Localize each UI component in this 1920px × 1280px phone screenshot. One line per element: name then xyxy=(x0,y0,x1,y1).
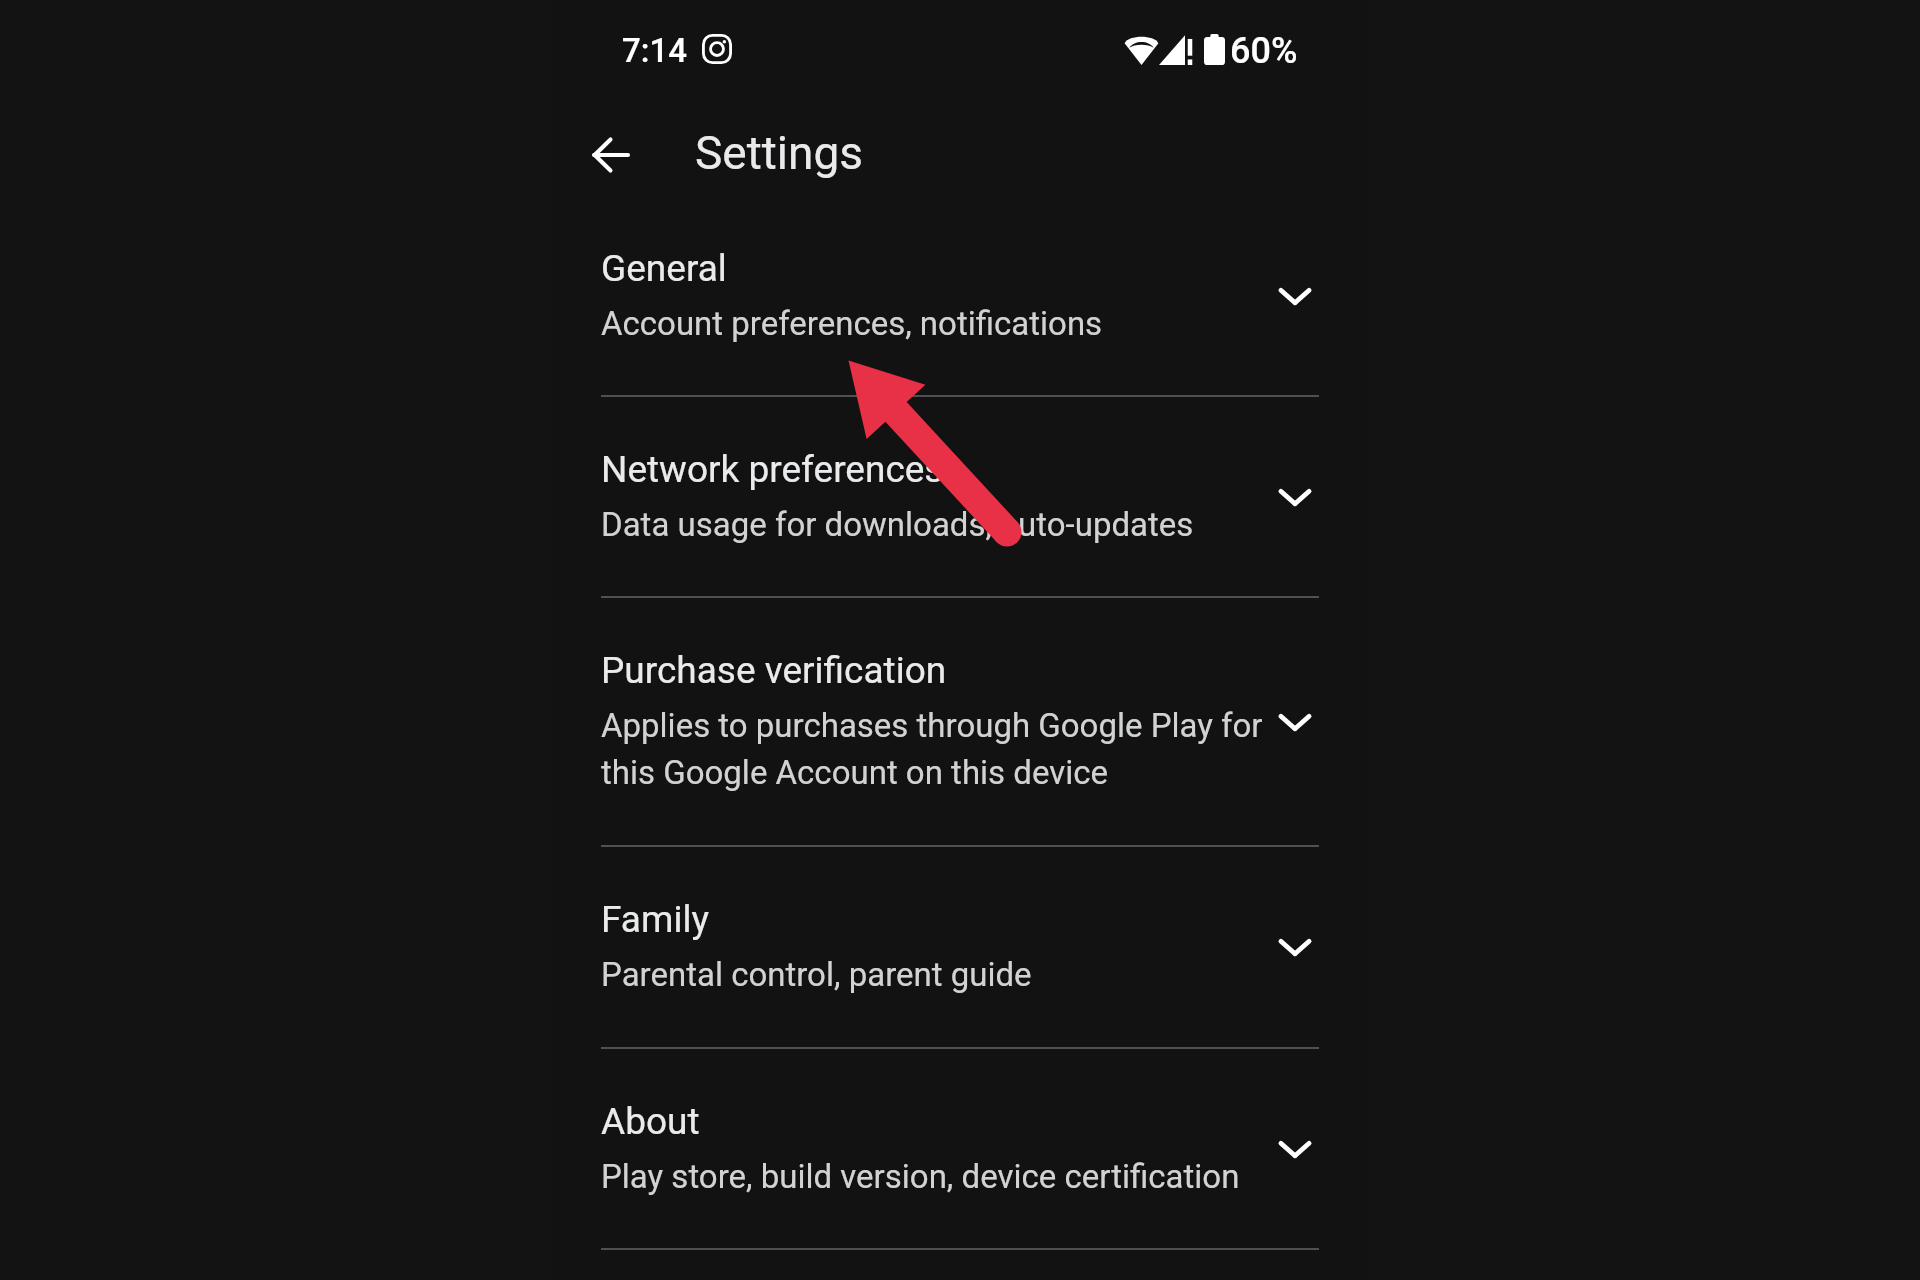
staticText: Network preferences xyxy=(601,447,944,491)
button[interactable]: About xyxy=(552,1048,1368,1249)
staticText: 60% xyxy=(1230,30,1298,72)
button[interactable]: Network preferences xyxy=(552,396,1368,597)
other: Expand General xyxy=(1278,284,1312,308)
staticText: About xyxy=(601,1099,700,1143)
other: Expand Purchase verification xyxy=(1278,710,1312,734)
staticText: Settings xyxy=(695,126,863,180)
button[interactable]: Family xyxy=(552,846,1368,1048)
other: Expand Family xyxy=(1278,935,1312,959)
staticText: Account preferences, notifications xyxy=(601,298,1103,345)
staticText: Parental control, parent guide xyxy=(601,949,1032,996)
button[interactable]: Purchase verification xyxy=(552,597,1368,846)
other: Expand About xyxy=(1278,1137,1312,1161)
staticText: Family xyxy=(601,897,709,941)
button[interactable]: General xyxy=(552,195,1368,396)
staticText: Purchase verification xyxy=(601,648,947,692)
staticText: 7:14 xyxy=(622,31,687,70)
button[interactable]: Back xyxy=(578,122,644,188)
staticText: Play store, build version, device certif… xyxy=(601,1151,1240,1198)
other: Expand Network preferences xyxy=(1278,485,1312,509)
staticText: Applies to purchases through Google Play… xyxy=(601,700,1263,794)
staticText: Data usage for downloads, auto-updates xyxy=(601,499,1194,546)
staticText: General xyxy=(601,246,727,290)
